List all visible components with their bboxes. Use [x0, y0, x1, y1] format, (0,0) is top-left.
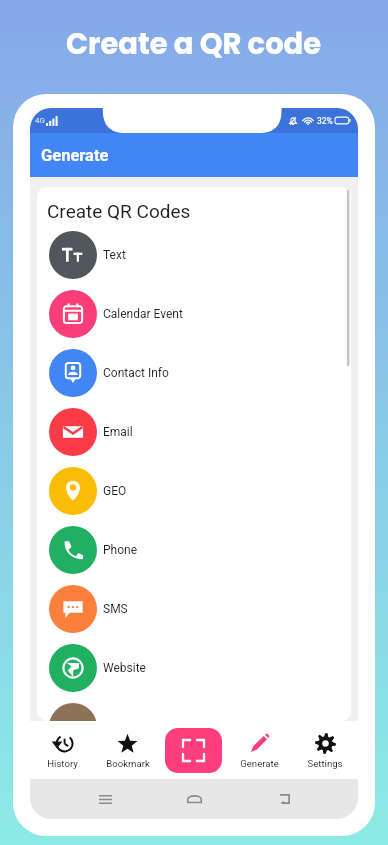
button[interactable]: Back — [269, 784, 299, 814]
staticText: 32% — [317, 116, 333, 126]
staticText: Email — [103, 425, 133, 439]
button[interactable]: Email — [37, 402, 351, 461]
button[interactable]: Settings — [292, 731, 358, 769]
staticText: Generate — [240, 758, 279, 769]
button[interactable]: Generate — [226, 731, 292, 769]
button[interactable]: Phone — [37, 520, 351, 579]
button[interactable]: Scan QR code — [165, 728, 222, 773]
staticText: Bookmark — [106, 758, 150, 769]
button[interactable]: Bookmark — [95, 731, 160, 769]
button[interactable]: Wifi — [37, 697, 351, 721]
button[interactable]: SMS — [37, 579, 351, 638]
button[interactable]: Website — [37, 638, 351, 697]
button[interactable]: Recents — [90, 784, 120, 814]
button[interactable]: Contact Info — [37, 343, 351, 402]
staticText: Phone — [103, 543, 138, 557]
staticText: Generate — [41, 146, 109, 165]
staticText: Contact Info — [103, 366, 169, 380]
staticText: 4G — [35, 116, 45, 125]
staticText: Create a QR code — [66, 24, 322, 65]
button[interactable]: Text — [37, 225, 351, 284]
staticText: Website — [103, 661, 146, 675]
staticText: Settings — [307, 758, 343, 769]
staticText: Create QR Codes — [47, 200, 191, 222]
staticText: GEO — [103, 484, 127, 498]
button[interactable]: GEO — [37, 461, 351, 520]
button[interactable]: History — [30, 731, 95, 769]
staticText: Calendar Event — [103, 307, 183, 321]
staticText: Text — [103, 248, 126, 262]
button[interactable]: Home — [179, 784, 209, 814]
button[interactable]: Calendar Event — [37, 284, 351, 343]
staticText: SMS — [103, 602, 128, 616]
staticText: History — [47, 758, 78, 769]
